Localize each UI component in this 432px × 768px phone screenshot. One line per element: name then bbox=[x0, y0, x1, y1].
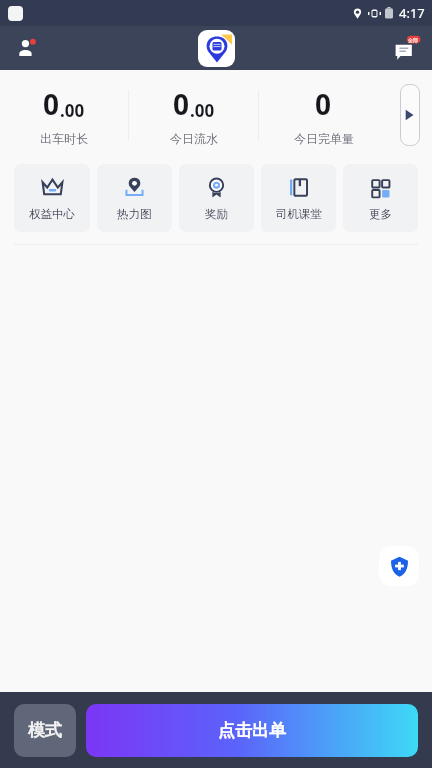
staticText: 0 bbox=[173, 85, 190, 123]
button[interactable]: 点击出单 bbox=[86, 704, 418, 757]
staticText: 全部 bbox=[408, 37, 418, 43]
staticText: 权益中心 bbox=[29, 207, 75, 221]
staticText: 4:17 bbox=[399, 4, 425, 22]
button[interactable]: 安全中心 bbox=[379, 546, 419, 586]
button[interactable]: 查看更多数据 bbox=[400, 84, 420, 146]
staticText: 热力图 bbox=[117, 207, 152, 221]
button[interactable]: 个人中心 bbox=[11, 32, 43, 64]
button[interactable]: 0 bbox=[129, 70, 258, 160]
button[interactable]: 更多 bbox=[343, 164, 418, 232]
button[interactable]: 首页 bbox=[198, 30, 235, 67]
button[interactable]: 权益中心 bbox=[14, 164, 90, 232]
button[interactable]: 0 bbox=[259, 70, 388, 160]
staticText: 点击出单 bbox=[218, 720, 286, 741]
button[interactable]: 0 bbox=[0, 70, 128, 160]
staticText: 今日完单量 bbox=[294, 131, 354, 146]
staticText: 模式 bbox=[28, 720, 62, 741]
staticText: .00 bbox=[60, 99, 85, 122]
staticText: 司机课堂 bbox=[276, 207, 322, 221]
staticText: 奖励 bbox=[205, 207, 228, 221]
staticText: 0 bbox=[315, 85, 332, 123]
button[interactable]: 奖励 bbox=[179, 164, 254, 232]
staticText: 0 bbox=[43, 85, 60, 123]
button[interactable]: 消息 bbox=[390, 31, 424, 65]
button[interactable]: 热力图 bbox=[97, 164, 172, 232]
staticText: .00 bbox=[190, 99, 215, 122]
staticText: 更多 bbox=[369, 207, 392, 221]
staticText: 今日流水 bbox=[170, 131, 218, 146]
staticText: 出车时长 bbox=[40, 131, 88, 146]
button[interactable]: 司机课堂 bbox=[261, 164, 336, 232]
button[interactable]: 模式 bbox=[14, 704, 76, 757]
